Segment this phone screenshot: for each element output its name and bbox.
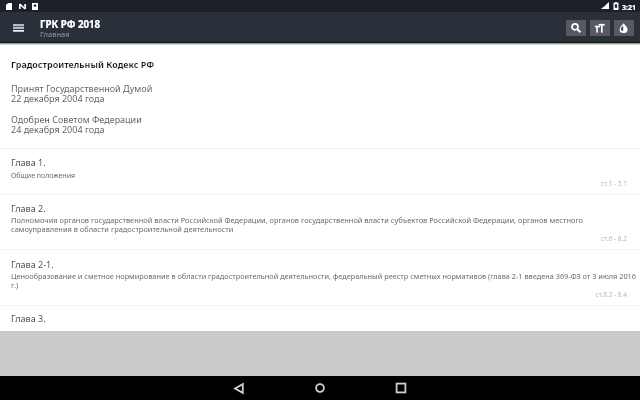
staticText: Полномочия органов государственной власт… bbox=[11, 215, 638, 234]
staticText: Принят Государственной Думой 22 декабря … bbox=[11, 82, 153, 104]
button[interactable]: Recent apps bbox=[389, 376, 413, 400]
button[interactable]: Text size bbox=[590, 20, 610, 36]
button[interactable]: Home bbox=[308, 376, 332, 400]
button[interactable]: Глава 2. bbox=[0, 195, 640, 250]
button[interactable]: Глава 2-1. bbox=[0, 250, 640, 306]
button[interactable]: Open navigation drawer bbox=[0, 12, 31, 42]
staticText: Общие положения bbox=[11, 171, 638, 181]
button[interactable]: Глава 1. bbox=[0, 149, 640, 195]
button[interactable]: Invert colors bbox=[614, 20, 634, 36]
staticText: ст.6 - 8.2 bbox=[0, 234, 627, 243]
staticText: Глава 2-1. bbox=[11, 258, 54, 270]
staticText: ст.8.3 - 8.4 bbox=[0, 290, 627, 299]
staticText: Главная bbox=[40, 29, 70, 39]
staticText: Одобрен Советом Федерации 24 декабря 200… bbox=[11, 113, 142, 135]
staticText: Градостроительный Кодекс РФ bbox=[11, 58, 155, 70]
staticText: Ценообразование и сметное нормирование в… bbox=[11, 271, 638, 290]
button[interactable]: Search bbox=[566, 20, 586, 36]
staticText: Глава 3. bbox=[11, 312, 46, 324]
staticText: ГРК РФ 2018 bbox=[40, 18, 101, 31]
staticText: Глава 1. bbox=[11, 156, 46, 168]
staticText: Глава 2. bbox=[11, 202, 46, 214]
button[interactable]: Back bbox=[227, 376, 251, 400]
staticText: ст.1 - 5.1 bbox=[0, 179, 627, 188]
staticText: 3:21 bbox=[622, 3, 636, 13]
